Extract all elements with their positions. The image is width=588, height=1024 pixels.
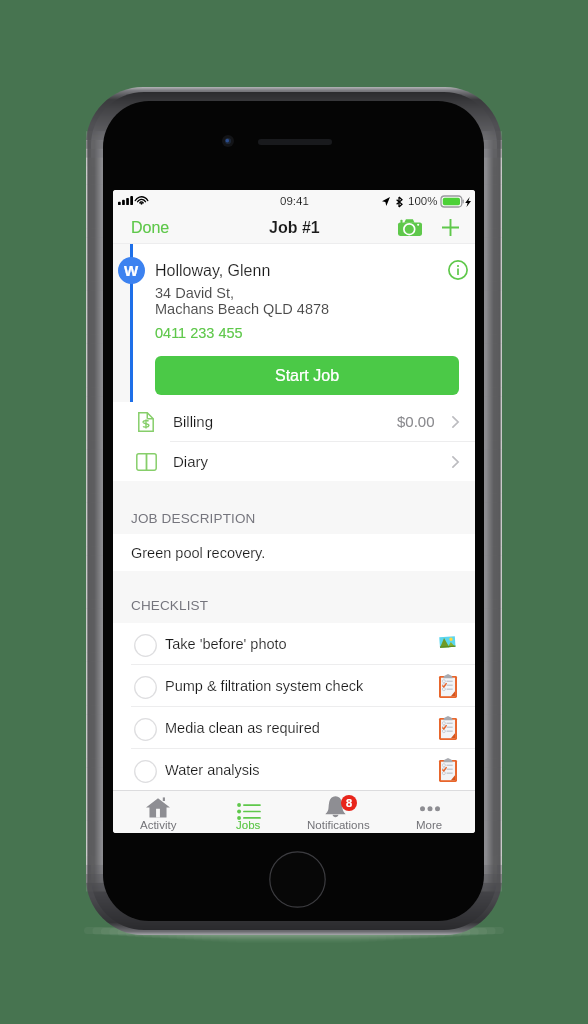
button[interactable]: Jobs xyxy=(203,791,293,833)
button[interactable]: Take 'before' photo xyxy=(113,623,475,664)
button[interactable]: Media clean as required xyxy=(113,707,475,748)
staticText: Green pool recovery. xyxy=(131,545,266,561)
staticText: 100% xyxy=(408,195,438,208)
staticText: CHECKLIST xyxy=(131,598,209,613)
staticText: 8 xyxy=(346,797,353,809)
staticText: Water analysis xyxy=(165,762,260,778)
staticText: W xyxy=(124,262,139,279)
staticText: Activity xyxy=(140,819,177,832)
staticText: 0411 233 455 xyxy=(155,325,243,341)
staticText: Machans Beach QLD 4878 xyxy=(155,301,330,317)
staticText: Jobs xyxy=(236,819,261,832)
staticText: Start Job xyxy=(275,367,340,385)
staticText: More xyxy=(416,819,443,832)
button[interactable]: Diary xyxy=(113,442,475,481)
button[interactable]: 8 xyxy=(293,791,384,833)
staticText: $0.00 xyxy=(397,413,435,430)
button[interactable]: Info xyxy=(446,258,470,282)
staticText: Media clean as required xyxy=(165,720,320,736)
button[interactable]: Add xyxy=(438,215,463,240)
staticText: Pump & filtration system check xyxy=(165,678,364,694)
staticText: Job #1 xyxy=(269,219,320,237)
button[interactable]: More xyxy=(384,791,475,833)
button[interactable]: Activity xyxy=(113,791,203,833)
staticText: Diary xyxy=(173,453,209,470)
staticText: Billing xyxy=(173,413,214,430)
staticText: 09:41 xyxy=(280,195,309,208)
staticText: Done xyxy=(131,219,170,237)
staticText: Take 'before' photo xyxy=(165,636,287,652)
staticText: 34 David St, xyxy=(155,285,234,301)
button[interactable]: Start Job xyxy=(155,356,459,395)
staticText: Holloway, Glenn xyxy=(155,262,271,280)
button[interactable]: Billing xyxy=(113,402,475,441)
button[interactable]: Camera xyxy=(394,215,426,240)
staticText: JOB DESCRIPTION xyxy=(131,511,256,526)
button[interactable]: Pump & filtration system check xyxy=(113,665,475,706)
button[interactable]: Done xyxy=(113,215,188,241)
button[interactable]: Water analysis xyxy=(113,749,475,790)
staticText: Notifications xyxy=(307,819,370,832)
